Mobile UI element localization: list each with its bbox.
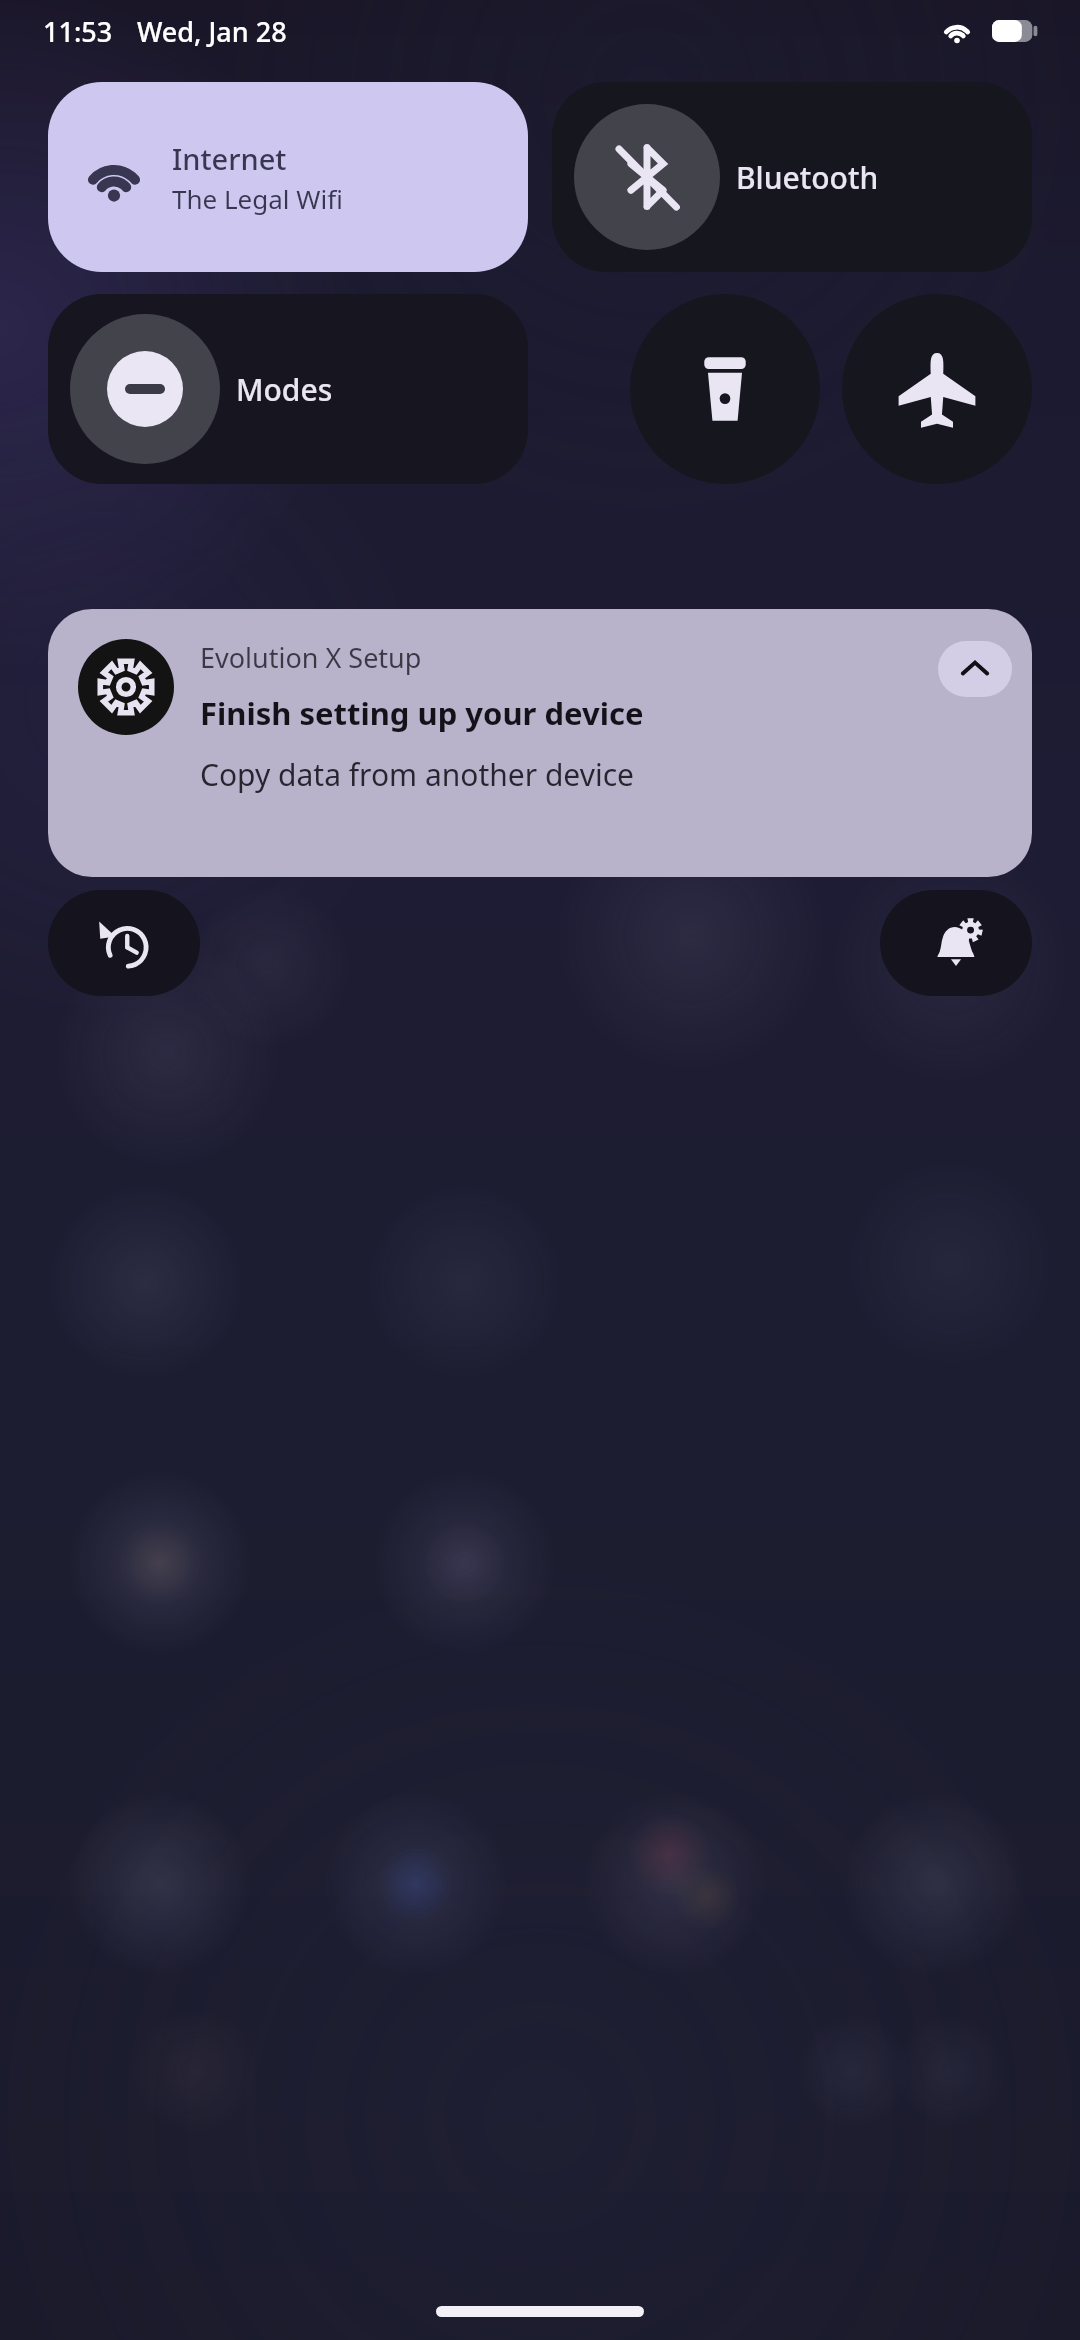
button[interactable]: Airplane mode <box>842 294 1032 484</box>
staticText: Internet <box>172 139 287 178</box>
button[interactable]: Notification settings <box>880 890 1032 996</box>
staticText: Copy data from another device <box>200 754 634 795</box>
button[interactable]: Evolution X Setup <box>48 609 1032 877</box>
staticText: Wed, Jan 28 <box>137 13 287 50</box>
button[interactable]: Internet <box>48 82 528 272</box>
staticText: Bluetooth <box>736 157 879 198</box>
button[interactable]: Collapse notification <box>938 641 1012 697</box>
button[interactable]: Modes <box>48 294 528 484</box>
button[interactable]: Bluetooth <box>552 82 1032 272</box>
staticText: 11:53 <box>43 13 113 50</box>
staticText: Modes <box>236 369 333 410</box>
staticText: Evolution X Setup <box>200 639 422 676</box>
button[interactable]: Flashlight <box>630 294 820 484</box>
staticText: The Legal Wifi <box>172 181 343 216</box>
button[interactable]: Notification history <box>48 890 200 996</box>
staticText: Finish setting up your device <box>200 692 644 734</box>
